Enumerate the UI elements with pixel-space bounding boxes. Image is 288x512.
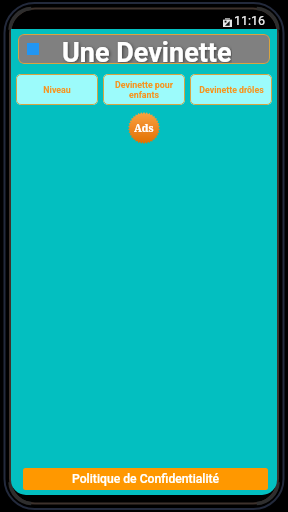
- staticText: Devinette drôles: [199, 85, 264, 95]
- staticText: Politique de Confidentialité: [72, 472, 220, 486]
- staticText: Niveau: [43, 85, 71, 95]
- button[interactable]: Niveau: [16, 74, 98, 105]
- staticText: Devinette pour enfants: [115, 80, 173, 100]
- staticText: Une Devinette: [62, 37, 232, 64]
- other: Ads: [128, 112, 160, 144]
- staticText: 11:16: [234, 13, 266, 28]
- other: Screenshot: [223, 18, 232, 27]
- button[interactable]: Devinette pour enfants: [103, 74, 185, 105]
- button[interactable]: Une Devinette: [18, 34, 270, 64]
- button[interactable]: Politique de Confidentialité: [23, 468, 268, 490]
- staticText: Ads: [134, 121, 154, 135]
- button[interactable]: Devinette drôles: [190, 74, 272, 105]
